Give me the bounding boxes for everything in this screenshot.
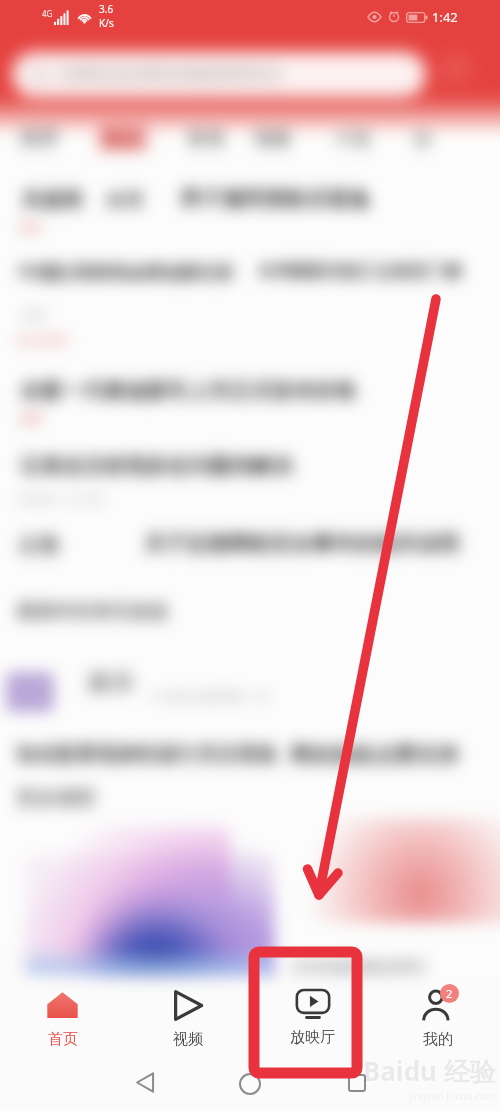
staticText: 京东电器超级品类日 [292, 958, 427, 977]
button[interactable]: 首页 [0, 975, 125, 1049]
staticText: Baidu 经验 [363, 1053, 496, 1089]
staticText: 视频 [173, 1030, 203, 1049]
button[interactable]: Recents [348, 1074, 366, 1092]
staticText: 推荐 [20, 412, 42, 426]
staticText: 小说 [334, 128, 370, 151]
staticText: 更多精彩 [16, 786, 96, 811]
staticText: 知名影星现身机场引关注现场 [16, 742, 276, 767]
staticText: 热点 [104, 128, 140, 151]
staticText: 网友纷纷点赞支持 [290, 742, 458, 768]
staticText: 中国队再获得金牌创新纪录 [18, 262, 234, 285]
staticText: 2 [446, 986, 453, 1001]
button[interactable]: 视频 [125, 975, 250, 1049]
staticText: 4G [42, 8, 53, 19]
button[interactable]: 2 [375, 975, 500, 1049]
staticText: 放映厅 [290, 1028, 335, 1047]
button[interactable]: Home [239, 1073, 261, 1095]
staticText: 视频 [254, 128, 290, 151]
staticText: 我的 [423, 1030, 453, 1049]
staticText: 影视 [188, 128, 224, 151]
staticText: 记者走访发现多处问题待解决 [20, 453, 293, 479]
button[interactable]: 放映厅 [250, 975, 375, 1047]
staticText: 娱 [414, 129, 431, 150]
staticText: 男子撞死情敌后逃逸 [180, 186, 369, 212]
staticText: jingyan.baidu.com [409, 1089, 496, 1103]
staticText: 大家都在坚持看的电视剧推荐给你 [56, 65, 281, 84]
staticText: 体育 [106, 189, 144, 213]
staticText: 凤凰网 [22, 188, 82, 213]
other: Highlight [249, 947, 362, 1078]
staticText: 3.6 [99, 2, 114, 16]
staticText: 公告 [18, 532, 60, 558]
button[interactable]: Back [135, 1072, 156, 1093]
staticText: 最新科技资讯速递 [16, 600, 168, 624]
staticText: 推荐 [20, 127, 58, 151]
staticText: K/s [99, 16, 114, 30]
staticText: 娱乐 [88, 668, 134, 697]
staticText: 关于近期网络安全事件的相关说明 [144, 531, 459, 557]
staticText: 首页 [48, 1030, 78, 1049]
staticText: 本周最新消息汇总速览了解 [258, 261, 462, 282]
staticText: 1:42 [432, 8, 458, 26]
staticText: 全新一代奥迪新车上市正式发布价格 [20, 378, 356, 404]
